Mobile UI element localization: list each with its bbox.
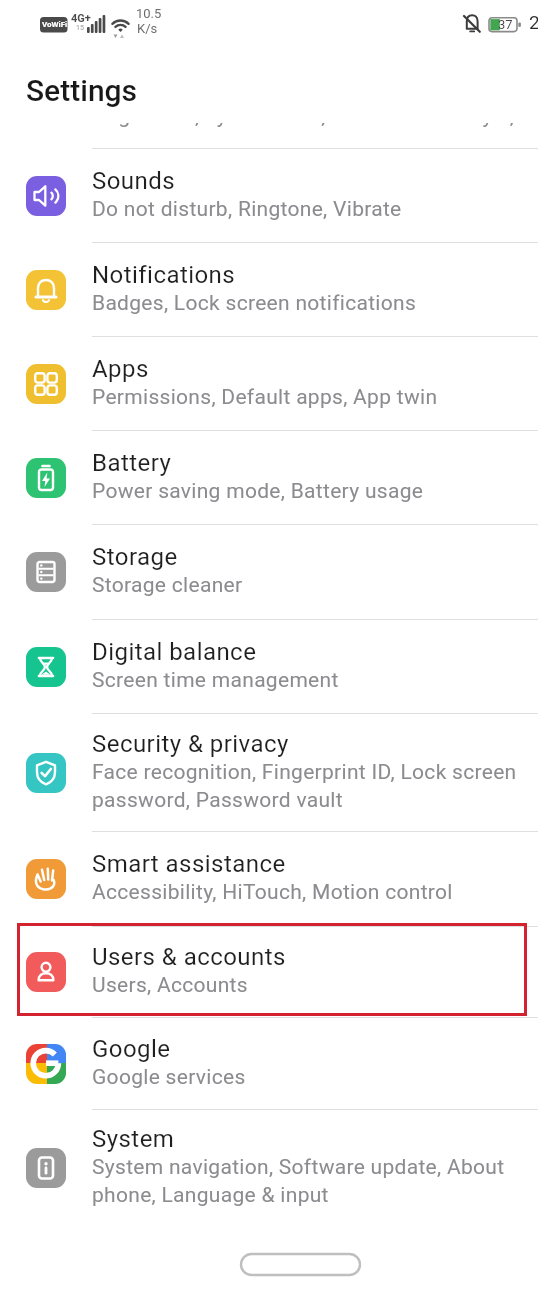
staticText: 37 (498, 17, 513, 32)
staticText: Google services (92, 1065, 246, 1090)
button[interactable]: Users & accounts (0, 927, 538, 1018)
staticText: K/s (137, 21, 158, 36)
staticText: Apps (92, 355, 149, 383)
staticText: Security & privacy (92, 730, 289, 758)
staticText: phone, Language & input (92, 1183, 329, 1208)
staticText: Settings (26, 73, 138, 108)
button[interactable]: Security & privacy (0, 714, 538, 832)
staticText: Users & accounts (92, 943, 286, 971)
button[interactable]: System (0, 1110, 538, 1227)
staticText: Brightness, Eye comfort, Home screen sty… (92, 123, 538, 129)
button[interactable]: Digital balance (0, 620, 538, 714)
staticText: Face recognition, Fingerprint ID, Lock s… (92, 760, 517, 785)
staticText: Do not disturb, Ringtone, Vibrate (92, 197, 402, 222)
button[interactable]: Smart assistance (0, 832, 538, 927)
staticText: Badges, Lock screen notifications (92, 291, 417, 316)
button[interactable]: Apps (0, 337, 538, 431)
staticText: 2 (529, 11, 538, 33)
button[interactable]: Storage (0, 525, 538, 620)
button[interactable]: Battery (0, 431, 538, 525)
button[interactable]: Notifications (0, 243, 538, 337)
staticText: Users, Accounts (92, 973, 248, 998)
staticText: Screen time management (92, 668, 339, 693)
staticText: Storage (92, 543, 178, 571)
staticText: 4G+ (71, 12, 91, 25)
staticText: VoWiFi (42, 20, 68, 29)
staticText: Sounds (92, 167, 176, 195)
staticText: Power saving mode, Battery usage (92, 479, 424, 504)
staticText: Permissions, Default apps, App twin (92, 385, 438, 410)
button[interactable]: Google (0, 1018, 538, 1110)
staticText: Google (92, 1035, 171, 1063)
staticText: Battery (92, 449, 172, 477)
staticText: Smart assistance (92, 850, 286, 878)
staticText: Storage cleaner (92, 573, 243, 598)
staticText: System (92, 1125, 175, 1153)
staticText: Notifications (92, 261, 236, 289)
staticText: System navigation, Software update, Abou… (92, 1155, 505, 1180)
staticText: Digital balance (92, 638, 257, 666)
staticText: 10.5 (136, 6, 162, 21)
staticText: 15 (76, 24, 84, 32)
staticText: Accessibility, HiTouch, Motion control (92, 880, 453, 905)
staticText: password, Password vault (92, 788, 343, 813)
button[interactable]: Sounds (0, 149, 538, 243)
